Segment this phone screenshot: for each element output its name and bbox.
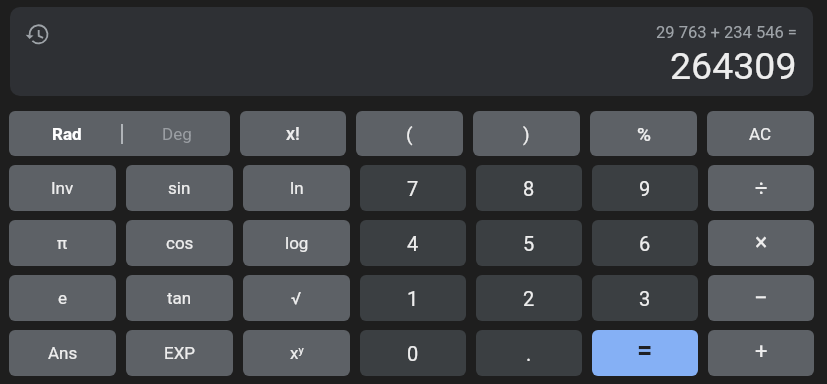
button[interactable]: ) <box>473 111 580 156</box>
button[interactable]: % <box>590 111 697 156</box>
staticText: 264309 <box>670 44 797 88</box>
staticText: 1 <box>407 287 419 310</box>
staticText: ln <box>290 178 304 198</box>
button[interactable]: = <box>592 330 698 376</box>
button[interactable]: 3 <box>592 275 698 321</box>
staticText: 4 <box>407 232 419 255</box>
staticText: ÷ <box>755 176 768 202</box>
button[interactable]: 5 <box>476 220 582 266</box>
staticText: e <box>58 288 68 308</box>
staticText: % <box>637 123 651 145</box>
button[interactable]: √ <box>243 275 350 321</box>
button[interactable]: − <box>708 275 814 321</box>
button[interactable]: + <box>708 330 814 376</box>
button[interactable]: Rad <box>9 111 230 156</box>
button[interactable]: ( <box>356 111 463 156</box>
button[interactable]: Ans <box>9 330 116 376</box>
staticText: Ans <box>48 343 78 363</box>
button[interactable]: e <box>9 275 116 321</box>
button[interactable]: 8 <box>476 165 582 211</box>
staticText: − <box>754 284 768 312</box>
staticText: 9 <box>639 177 651 200</box>
button[interactable]: ln <box>243 165 350 211</box>
button[interactable]: . <box>476 330 582 376</box>
staticText: Inv <box>51 178 74 198</box>
button[interactable]: 6 <box>592 220 698 266</box>
staticText: 5 <box>523 232 535 255</box>
button[interactable]: 1 <box>360 275 466 321</box>
staticText: log <box>285 233 309 253</box>
button[interactable]: x! <box>240 111 346 156</box>
button[interactable]: 2 <box>476 275 582 321</box>
staticText: π <box>57 233 68 253</box>
button[interactable]: sin <box>126 165 233 211</box>
button[interactable]: EXP <box>126 330 233 376</box>
staticText: √ <box>291 288 302 308</box>
staticText: x! <box>286 123 300 144</box>
staticText: Rad <box>52 124 82 144</box>
staticText: 7 <box>407 177 419 200</box>
staticText: ( <box>406 123 413 145</box>
staticText: 29 763 + 234 546 = <box>656 23 797 42</box>
button[interactable]: 9 <box>592 165 698 211</box>
button[interactable]: AC <box>707 111 814 156</box>
staticText: = <box>637 334 653 366</box>
staticText: . <box>526 342 532 365</box>
staticText: 2 <box>523 287 535 310</box>
staticText: 6 <box>639 232 651 255</box>
button[interactable]: Inv <box>9 165 116 211</box>
button[interactable]: 0 <box>360 330 466 376</box>
button[interactable]: cos <box>126 220 233 266</box>
button[interactable]: ÷ <box>708 165 814 211</box>
staticText: AC <box>749 124 772 144</box>
staticText: Deg <box>162 124 192 144</box>
staticText: 8 <box>523 177 535 200</box>
staticText: EXP <box>164 343 196 363</box>
button[interactable]: 7 <box>360 165 466 211</box>
staticText: cos <box>166 233 194 253</box>
button[interactable]: × <box>708 220 814 266</box>
staticText: sin <box>168 178 191 198</box>
button[interactable]: π <box>9 220 116 266</box>
staticText: + <box>755 339 768 365</box>
button[interactable]: 4 <box>360 220 466 266</box>
button[interactable]: xy <box>243 330 350 376</box>
staticText: xy <box>290 343 304 363</box>
staticText: × <box>755 229 768 256</box>
staticText: tan <box>167 288 192 308</box>
staticText: 0 <box>407 342 419 365</box>
button[interactable]: log <box>243 220 350 266</box>
staticText: ) <box>523 123 530 145</box>
button[interactable]: History <box>24 22 50 48</box>
button[interactable]: tan <box>126 275 233 321</box>
staticText: 3 <box>639 287 651 310</box>
